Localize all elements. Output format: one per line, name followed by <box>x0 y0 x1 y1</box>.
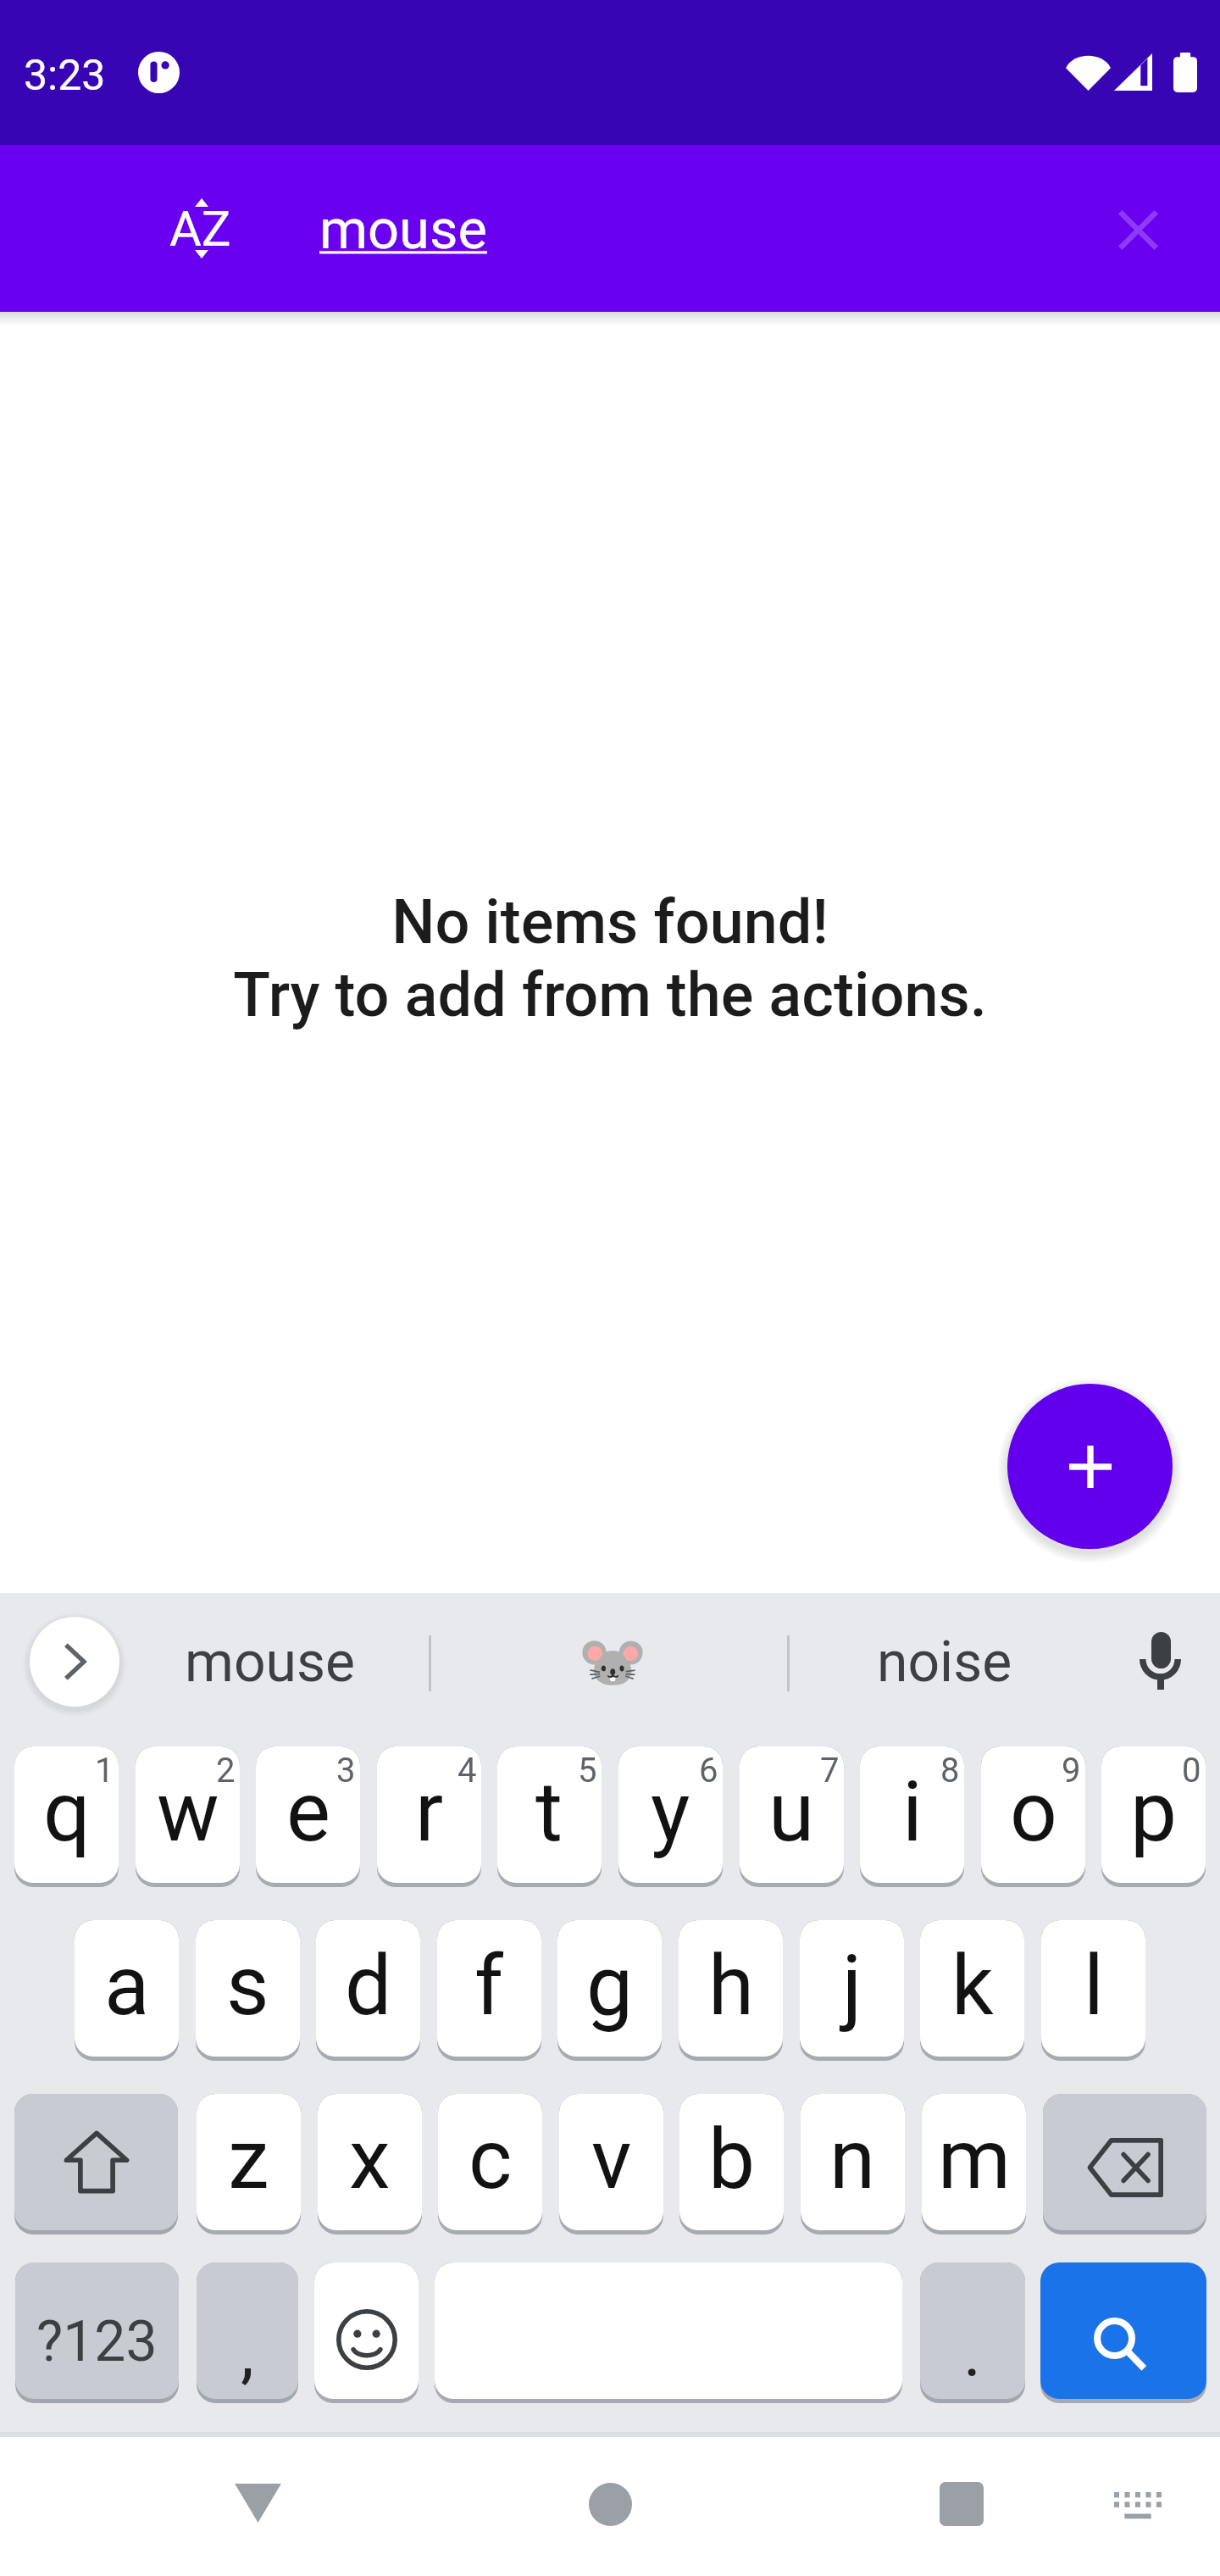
staticText: 🐭 <box>578 1629 648 1695</box>
staticText: f <box>474 1937 504 2035</box>
staticText: k <box>951 1937 994 2035</box>
staticText: m <box>938 2111 1011 2208</box>
button[interactable]: Emoji <box>314 2262 419 2399</box>
button[interactable]: Clear search <box>1087 179 1189 280</box>
staticText: a <box>104 1937 150 2035</box>
staticText: 3:23 <box>24 51 106 101</box>
button[interactable]: Symbols <box>15 2262 179 2399</box>
button[interactable]: y <box>618 1746 723 1883</box>
staticText: 5 <box>578 1751 597 1790</box>
staticText: , <box>241 2313 254 2393</box>
staticText: l <box>1084 1937 1104 2035</box>
button[interactable]: n <box>801 2094 905 2230</box>
button[interactable]: u <box>740 1746 844 1883</box>
button[interactable]: e <box>256 1746 360 1883</box>
staticText: No items found! Try to add from the acti… <box>233 886 987 1031</box>
staticText: h <box>708 1937 754 2035</box>
button[interactable]: Space <box>435 2262 902 2399</box>
button[interactable]: Sort A to Z <box>146 152 254 304</box>
staticText: AZ <box>169 200 231 258</box>
staticText: u <box>768 1763 815 1861</box>
staticText: p <box>1130 1763 1178 1861</box>
staticText: c <box>469 2111 513 2208</box>
button[interactable]: Home <box>546 2440 674 2568</box>
button[interactable]: o <box>981 1746 1085 1883</box>
staticText: 1 <box>95 1751 114 1790</box>
staticText: s <box>226 1937 269 2035</box>
staticText: noise <box>877 1629 1012 1695</box>
staticText: e <box>286 1763 330 1861</box>
button[interactable]: l <box>1041 1920 1145 2057</box>
button[interactable]: a <box>75 1920 179 2057</box>
button[interactable]: v <box>559 2094 663 2230</box>
button[interactable]: h <box>679 1920 783 2057</box>
button[interactable]: c <box>438 2094 542 2230</box>
staticText: r <box>415 1763 444 1861</box>
staticText: mouse <box>319 197 487 262</box>
button[interactable]: Period <box>920 2262 1025 2399</box>
staticText: 7 <box>820 1751 840 1790</box>
button[interactable]: Voice input <box>1109 1611 1211 1713</box>
button[interactable]: g <box>557 1920 662 2057</box>
button[interactable]: q <box>14 1746 119 1883</box>
button[interactable]: d <box>316 1920 420 2057</box>
staticText: . <box>963 2313 982 2393</box>
button[interactable]: Search <box>1040 2262 1206 2399</box>
button[interactable]: Back <box>194 2439 321 2566</box>
staticText: 4 <box>457 1751 477 1790</box>
button[interactable]: w <box>136 1746 240 1883</box>
button[interactable]: Comma <box>197 2262 298 2399</box>
staticText: v <box>591 2111 632 2208</box>
button[interactable]: r <box>377 1746 481 1883</box>
staticText: w <box>157 1763 219 1861</box>
button[interactable]: p <box>1101 1746 1206 1883</box>
button[interactable]: s <box>196 1920 300 2057</box>
staticText: 6 <box>699 1751 718 1790</box>
staticText: i <box>902 1763 923 1861</box>
staticText: 0 <box>1182 1751 1201 1790</box>
button[interactable]: t <box>497 1746 602 1883</box>
staticText: 2 <box>216 1751 236 1790</box>
button[interactable]: k <box>920 1920 1024 2057</box>
button[interactable]: i <box>860 1746 964 1883</box>
button[interactable]: m <box>922 2094 1026 2230</box>
button[interactable]: f <box>437 1920 541 2057</box>
staticText: z <box>228 2111 269 2208</box>
button[interactable]: More suggestions <box>30 1617 119 1707</box>
button[interactable]: Recent apps <box>898 2440 1025 2568</box>
staticText: y <box>651 1763 690 1861</box>
staticText: x <box>349 2111 391 2208</box>
staticText: mouse <box>185 1629 355 1695</box>
staticText: n <box>829 2111 876 2208</box>
staticText: t <box>535 1763 563 1861</box>
button[interactable]: Add item <box>1007 1384 1173 1549</box>
button[interactable]: x <box>318 2094 422 2230</box>
button[interactable]: Shift <box>14 2094 178 2230</box>
button[interactable]: Switch keyboard <box>1080 2448 1195 2562</box>
staticText: g <box>586 1937 634 2035</box>
staticText: q <box>43 1763 91 1861</box>
staticText: ?123 <box>36 2309 158 2374</box>
staticText: 9 <box>1062 1751 1081 1790</box>
staticText: b <box>708 2111 756 2208</box>
staticText: j <box>842 1937 862 2035</box>
staticText: o <box>1010 1763 1057 1861</box>
staticText: d <box>345 1937 392 2035</box>
button[interactable]: j <box>800 1920 904 2057</box>
button[interactable]: Backspace <box>1043 2094 1206 2230</box>
staticText: 8 <box>940 1751 960 1790</box>
button[interactable]: b <box>679 2094 784 2230</box>
staticText: 3 <box>336 1751 356 1790</box>
button[interactable]: z <box>197 2094 301 2230</box>
